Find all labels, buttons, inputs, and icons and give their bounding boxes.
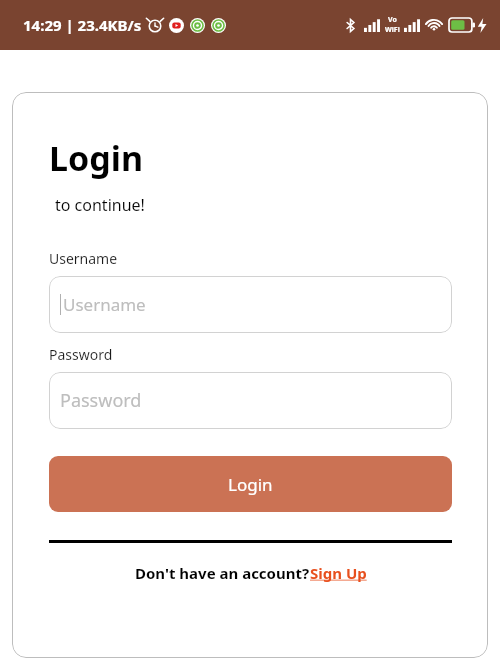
staticText: Username bbox=[49, 249, 118, 268]
staticText: 14:29 | 23.4KB/s bbox=[23, 15, 142, 35]
staticText: Vo bbox=[388, 15, 397, 25]
staticText: Sign Up bbox=[310, 563, 367, 583]
staticText: Password bbox=[60, 388, 142, 413]
staticText: Don't have an account? bbox=[135, 563, 310, 583]
staticText: to continue! bbox=[55, 194, 145, 216]
staticText: Username bbox=[63, 293, 146, 316]
button[interactable]: Password bbox=[49, 372, 452, 429]
staticText: Password bbox=[49, 345, 113, 364]
button[interactable]: Sign Up bbox=[310, 563, 367, 583]
staticText: WiFi bbox=[385, 25, 400, 35]
button[interactable]: Login bbox=[49, 456, 452, 512]
button[interactable]: Username bbox=[49, 276, 452, 333]
staticText: Login bbox=[228, 473, 273, 496]
staticText: Login bbox=[49, 135, 144, 181]
